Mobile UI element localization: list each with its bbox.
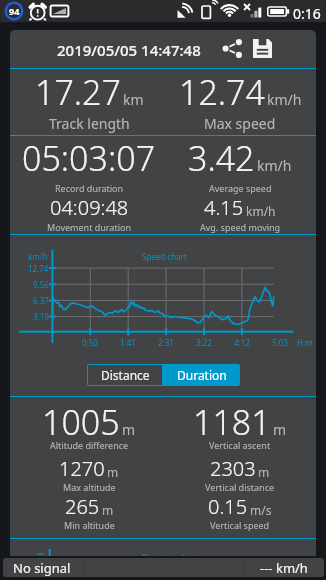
staticText: 12.74 [179, 69, 265, 115]
button[interactable]: Distance [88, 365, 162, 385]
staticText: Speed chart [142, 251, 187, 262]
staticText: km [123, 90, 144, 109]
staticText: 4.15 [204, 194, 244, 221]
staticText: Min altitude [64, 519, 115, 531]
staticText: 3:22 [196, 337, 212, 348]
staticText: 1005 [42, 399, 120, 445]
staticText: 1270 [59, 455, 105, 482]
staticText: m [273, 420, 287, 439]
staticText: 3.19 [33, 311, 49, 322]
staticText: 0:50 [82, 337, 98, 348]
staticText: 94 [9, 5, 20, 17]
staticText: 04:09:48 [50, 194, 129, 221]
staticText: 3.42 [188, 135, 255, 181]
staticText: 4:12 [234, 337, 250, 348]
staticText: km/h [28, 251, 48, 262]
staticText: Track length [49, 114, 130, 133]
staticText: Movement duration [47, 221, 131, 233]
staticText: 1:41 [120, 337, 136, 348]
staticText: 6.37 [33, 295, 49, 306]
staticText: 2303 [210, 455, 256, 482]
staticText: m [258, 464, 270, 480]
staticText: Distance [101, 367, 150, 383]
staticText: 0:16 [293, 4, 321, 23]
staticText: Vertical distance [205, 481, 275, 493]
staticText: Max altitude [63, 481, 116, 493]
staticText: m [37, 549, 45, 556]
staticText: m [102, 502, 114, 518]
staticText: km/h [246, 203, 276, 219]
staticText: Avg. speed moving [200, 221, 281, 233]
staticText: No signal [13, 559, 71, 577]
staticText: 12.74 [28, 263, 49, 274]
staticText: 5:03 [272, 337, 288, 348]
staticText: 2:31 [158, 337, 174, 348]
staticText: 9.56 [33, 279, 49, 290]
staticText: --- km/h [260, 559, 308, 577]
staticText: Duration [177, 367, 227, 383]
staticText: 2019/05/05 14:47:48 [57, 40, 201, 60]
staticText: 1181 [193, 399, 271, 445]
staticText: Altitude difference [50, 439, 129, 451]
staticText: Vertical ascent [209, 439, 271, 451]
staticText: km/h [257, 156, 292, 175]
button[interactable]: Share [215, 35, 249, 61]
staticText: 0.15 [208, 493, 248, 520]
staticText: Max speed [204, 114, 276, 133]
button[interactable]: Duration [163, 364, 240, 386]
staticText: m [122, 420, 136, 439]
staticText: Vertical speed [210, 519, 270, 531]
staticText: Record duration [55, 182, 124, 194]
staticText: Elevation chart [142, 552, 198, 556]
staticText: m [107, 464, 119, 480]
button[interactable]: Save [245, 35, 279, 61]
staticText: H:m [297, 337, 313, 348]
staticText: m/s [250, 502, 272, 518]
staticText: km/h [267, 90, 302, 109]
staticText: 265 [65, 493, 100, 520]
staticText: 05:03:07 [22, 135, 156, 181]
staticText: 17.27 [35, 69, 121, 115]
staticText: Average speed [209, 182, 272, 194]
